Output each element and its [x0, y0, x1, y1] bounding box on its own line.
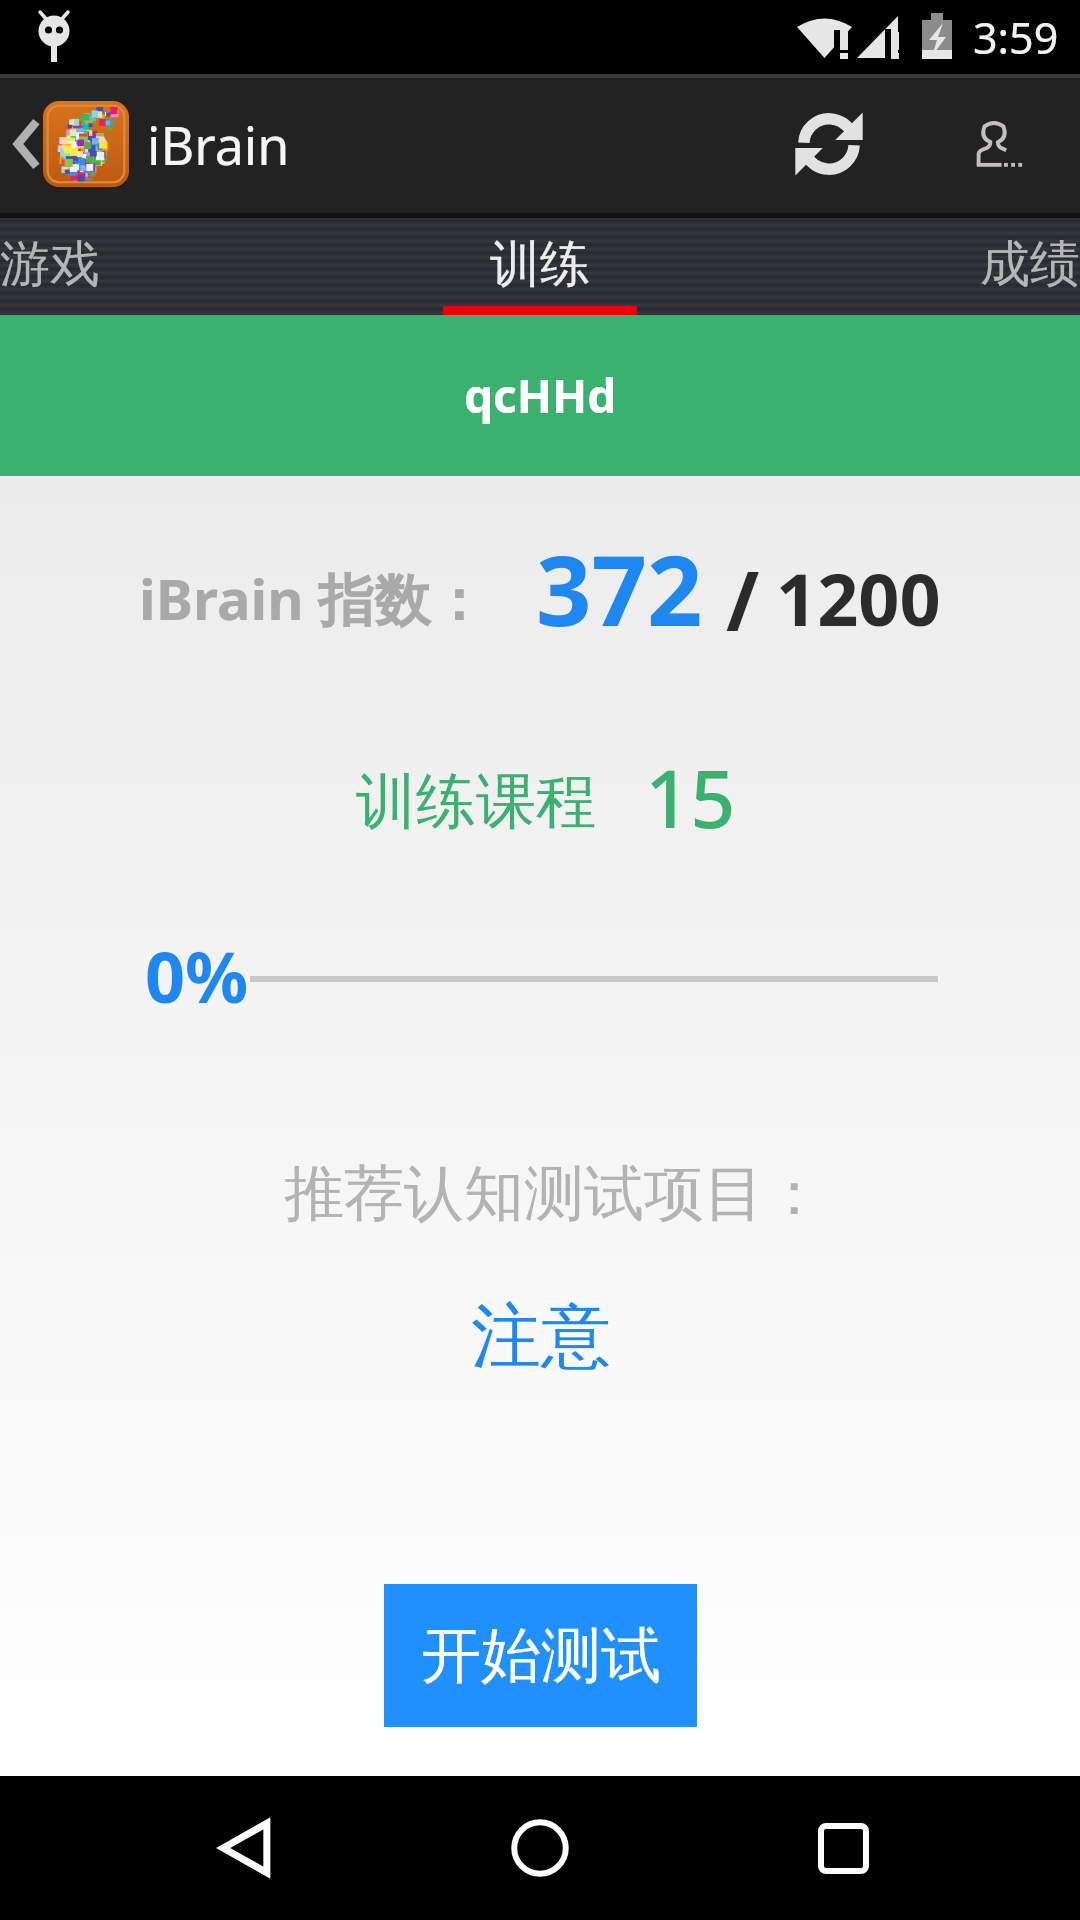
staticText: 15	[645, 744, 736, 852]
button[interactable]: 游戏	[0, 213, 360, 315]
staticText: 3:59	[973, 8, 1059, 67]
button[interactable]: Refresh	[774, 89, 884, 199]
staticText: qcHHd	[464, 364, 617, 427]
button[interactable]: Back	[190, 1793, 300, 1903]
button[interactable]: Back	[0, 74, 46, 213]
staticText: 372	[536, 522, 703, 654]
button[interactable]: 训练	[360, 213, 720, 315]
staticText: 游戏	[0, 233, 100, 296]
button[interactable]: iBrain app icon	[43, 101, 129, 187]
staticText: 推荐认知测试项目：	[284, 1156, 824, 1232]
button[interactable]: 成绩	[720, 213, 1080, 315]
staticText: 0%	[145, 928, 249, 1023]
button[interactable]: Account	[945, 89, 1055, 199]
staticText: 训练课程	[356, 764, 596, 840]
staticText: 开始测试	[421, 1618, 661, 1694]
staticText: iBrain	[147, 109, 290, 180]
button[interactable]: Recent apps	[788, 1793, 898, 1903]
button[interactable]: 注意	[466, 1293, 616, 1377]
staticText: 成绩	[980, 233, 1080, 296]
staticText: 训练	[490, 233, 590, 296]
staticText: /	[726, 545, 760, 654]
staticText: 1200	[776, 549, 941, 647]
staticText: iBrain 指数：	[139, 560, 487, 636]
button[interactable]: Home	[485, 1793, 595, 1903]
button[interactable]: 开始测试	[384, 1584, 697, 1727]
staticText: 注意	[471, 1293, 611, 1377]
